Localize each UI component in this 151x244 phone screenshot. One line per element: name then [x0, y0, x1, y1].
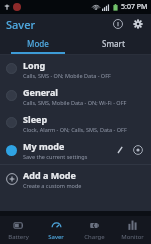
staticText: General — [23, 86, 59, 98]
staticText: Battery — [8, 233, 29, 241]
staticText: Add a Mode — [23, 169, 76, 181]
button[interactable]: Add a Mode — [0, 165, 151, 193]
staticText: Clock, Alarm - ON; Calls, SMS, Data - OF… — [23, 126, 127, 133]
button[interactable]: Sleep — [0, 109, 151, 136]
button[interactable]: My mode — [0, 136, 151, 164]
button[interactable]: Edit — [111, 141, 129, 159]
button[interactable]: Info — [110, 16, 126, 32]
staticText: Saver — [6, 17, 36, 32]
staticText: Charge — [84, 233, 105, 241]
button[interactable]: Settings — [130, 16, 146, 32]
staticText: 5:07 PM — [121, 2, 148, 12]
staticText: Mode — [27, 38, 49, 49]
staticText: Long — [23, 59, 46, 71]
button[interactable]: Saver — [37, 216, 75, 244]
button[interactable]: Smart — [75, 34, 151, 52]
button[interactable]: Monitor — [113, 216, 151, 244]
staticText: Saver — [48, 233, 64, 241]
staticText: Create a custom mode — [23, 182, 82, 189]
button[interactable]: Details — [129, 141, 147, 159]
button[interactable]: Battery — [0, 216, 37, 244]
button[interactable]: Long — [0, 55, 151, 82]
staticText: Calls, SMS, Mobile Data - ON; Wi-Fi - OF… — [23, 99, 127, 106]
staticText: Calls, SMS - ON; Mobile Data - OFF — [23, 72, 111, 79]
staticText: My mode — [23, 140, 65, 152]
staticText: Sleep — [23, 113, 48, 125]
button[interactable]: General — [0, 82, 151, 109]
button[interactable]: Charge — [75, 216, 113, 244]
button[interactable]: Mode — [0, 34, 75, 52]
staticText: Save the current settings — [23, 153, 88, 160]
staticText: Monitor — [121, 233, 144, 241]
staticText: Smart — [102, 38, 125, 49]
